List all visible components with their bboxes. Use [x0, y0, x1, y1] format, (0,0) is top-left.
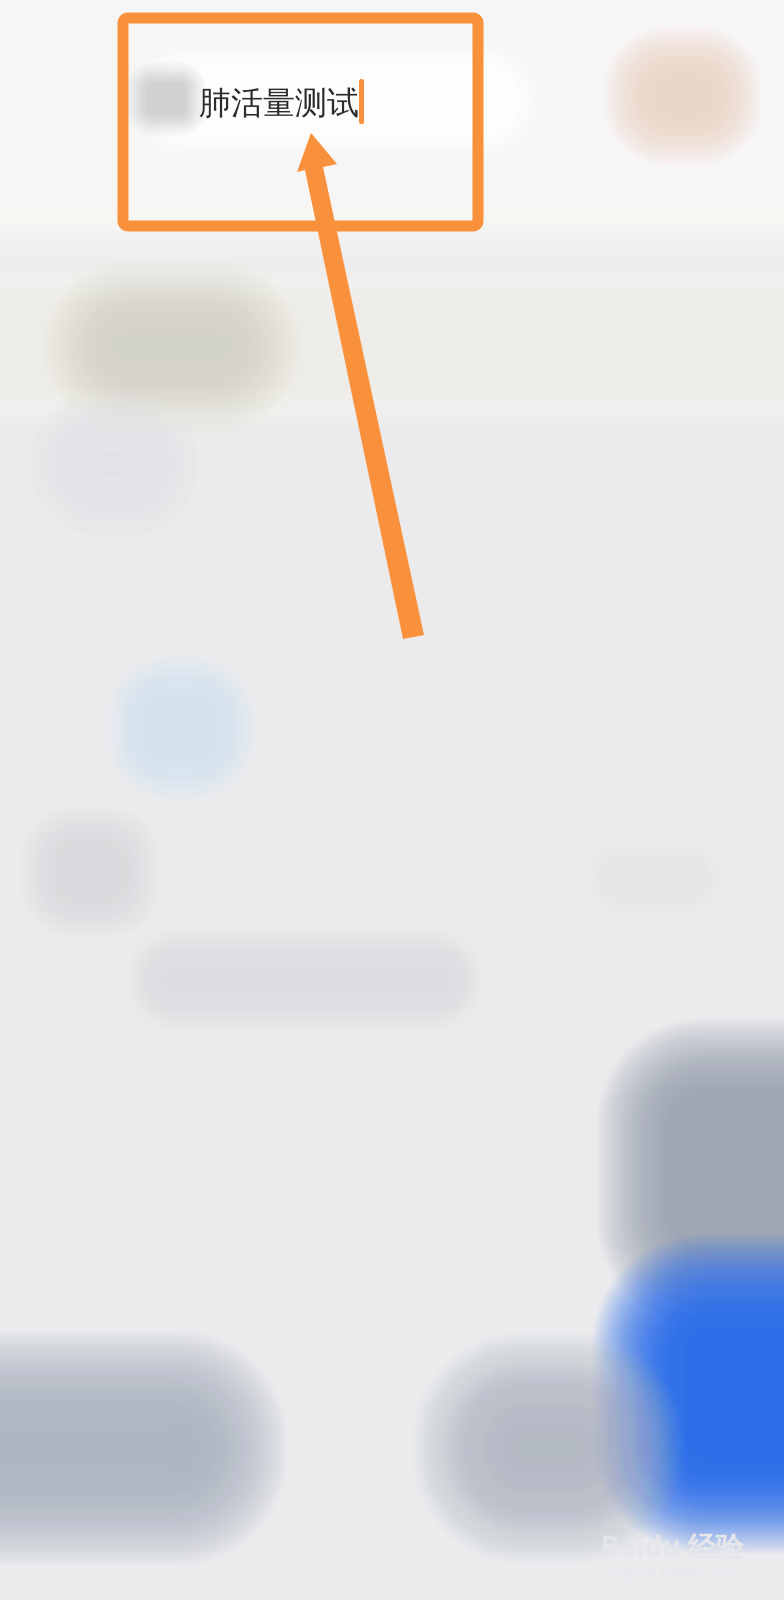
- button[interactable]: 肺活量测试: [0, 0, 784, 200]
- staticText: 肺活量测试: [199, 83, 359, 123]
- button[interactable]: Symbols: [0, 0, 784, 1600]
- button[interactable]: Space: [0, 0, 784, 1600]
- button[interactable]: 搜索: [0, 0, 784, 213]
- staticText: Baidu 经验: [600, 1527, 743, 1565]
- button[interactable]: Search: [0, 0, 784, 1600]
- button[interactable]: Delete: [0, 0, 784, 1600]
